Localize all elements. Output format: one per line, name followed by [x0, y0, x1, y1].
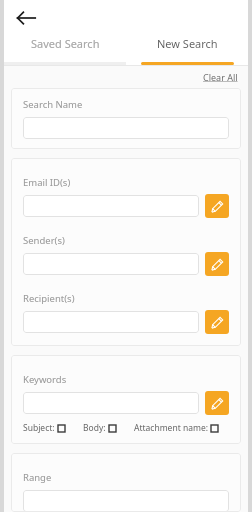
button[interactable]: Edit	[205, 391, 229, 415]
staticText: Search Name	[23, 98, 83, 111]
staticText: Subject:	[23, 422, 55, 434]
button[interactable]: New Search	[126, 36, 248, 51]
staticText: New Search	[157, 36, 218, 51]
button[interactable]	[23, 195, 199, 217]
button[interactable]: Body:	[83, 422, 116, 434]
staticText: Recipient(s)	[23, 292, 75, 305]
staticText: Keywords	[23, 373, 67, 386]
staticText: Range	[23, 471, 52, 484]
button[interactable]	[23, 253, 199, 275]
staticText: Clear All	[203, 71, 238, 83]
button[interactable]: Edit	[205, 252, 229, 276]
button[interactable]: Clear All	[203, 71, 238, 83]
button[interactable]: Attachment name:	[134, 422, 218, 434]
button[interactable]: Saved Search	[4, 36, 126, 51]
button[interactable]: Subject:	[23, 422, 65, 434]
button[interactable]	[23, 392, 199, 414]
button[interactable]: Edit	[205, 194, 229, 218]
button[interactable]	[23, 490, 229, 512]
staticText: Sender(s)	[23, 234, 65, 247]
button[interactable]	[23, 311, 199, 333]
button[interactable]	[23, 117, 229, 139]
staticText: Email ID(s)	[23, 176, 71, 189]
button[interactable]: Back	[11, 3, 41, 33]
staticText: Body:	[83, 422, 106, 434]
staticText: Saved Search	[31, 36, 100, 51]
staticText: Attachment name:	[134, 422, 208, 434]
button[interactable]: Edit	[205, 310, 229, 334]
